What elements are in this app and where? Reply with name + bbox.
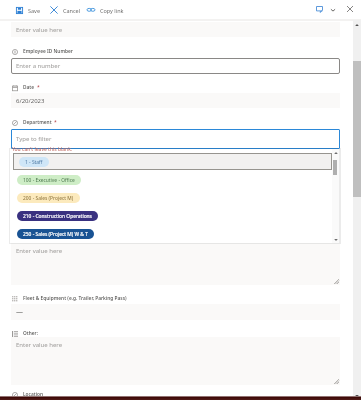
staticText: Department [23,119,52,126]
button[interactable]: Scroll down [353,391,361,400]
button[interactable]: Cancel [50,6,81,14]
staticText: Save [28,7,41,14]
staticText: You can't leave this blank. [12,146,73,153]
button[interactable]: Enter value here [11,22,340,37]
staticText: Cancel [63,7,81,14]
button[interactable]: Enter value here [11,337,340,385]
staticText: Other: [23,330,38,337]
staticText: * [37,84,40,91]
button[interactable]: Copy link [87,6,124,14]
staticText: — [16,307,23,317]
button[interactable]: Scroll up [353,20,361,29]
button[interactable]: Location [12,391,44,398]
button[interactable]: Date [12,84,40,91]
button[interactable]: Scroll list down [332,236,339,243]
button[interactable]: 250 - Sales (Project M) W & T [17,229,94,239]
button[interactable]: — [11,304,340,320]
staticText: Copy link [100,7,124,14]
staticText: 6/20/2023 [16,97,45,105]
button[interactable]: Department [12,119,57,126]
button[interactable]: Employee ID Number [12,48,73,55]
button[interactable]: 100 - Executive - Office [17,175,81,185]
button[interactable]: Scroll list up [332,149,339,156]
staticText: Location [23,391,44,398]
staticText: Enter value here [16,26,63,34]
button[interactable]: 6/20/2023 [11,93,340,108]
button[interactable]: Type to filter [11,129,340,149]
button[interactable]: Save [15,6,41,14]
button[interactable]: 210 - Construction Operations [17,211,98,221]
button[interactable]: Enter value here [11,243,340,285]
button[interactable]: Enter a number [11,58,340,74]
staticText: Enter a number [16,62,61,70]
staticText: 200 - Sales (Project M) [23,195,74,202]
staticText: Enter value here [16,341,63,349]
staticText: 250 - Sales (Project M) W & T [23,231,88,238]
staticText: Fleet & Equipment (e.g. Trailer, Parking… [23,295,127,302]
staticText: * [54,119,57,126]
staticText: Type to filter [16,135,52,143]
button[interactable]: 200 - Sales (Project M) [17,193,80,203]
button[interactable]: More options [327,4,339,16]
staticText: Date [23,84,35,91]
button[interactable]: 1 - Staff [13,153,332,170]
button[interactable]: Close [344,3,356,15]
button[interactable]: Other: [12,330,38,337]
staticText: Enter value here [16,247,63,255]
button[interactable]: Comments [313,3,326,16]
staticText: Employee ID Number [23,48,73,55]
button[interactable]: Fleet & Equipment (e.g. Trailer, Parking… [12,295,127,302]
staticText: 1 - Staff [25,159,43,166]
staticText: 210 - Construction Operations [23,213,92,220]
staticText: 100 - Executive - Office [23,177,75,184]
